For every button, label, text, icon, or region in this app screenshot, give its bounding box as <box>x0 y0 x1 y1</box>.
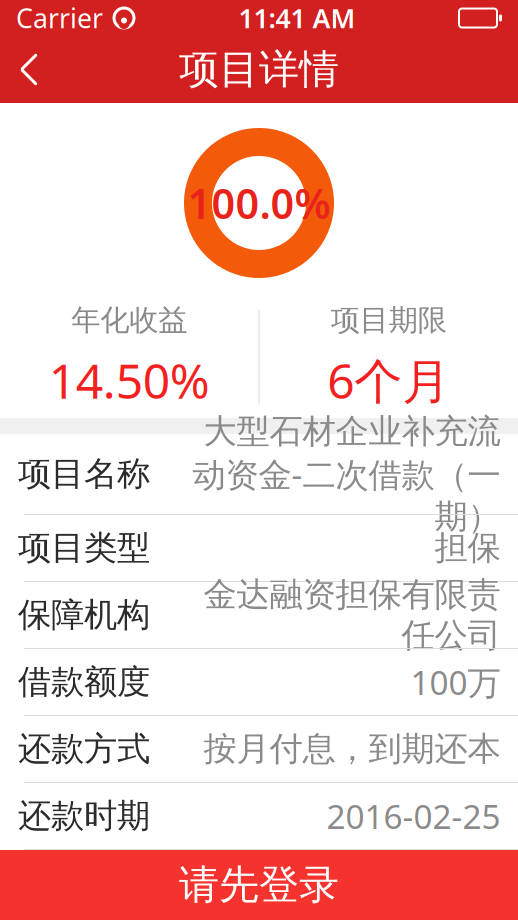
staticText: 按月付息，到期还本 <box>203 728 500 769</box>
staticText: 请先登录 <box>179 860 339 909</box>
staticText: 100万 <box>410 660 500 704</box>
staticText: 保障机构 <box>18 594 150 635</box>
button[interactable]: 返回 <box>0 39 58 99</box>
staticText: 年化收益 <box>71 302 187 338</box>
staticText: 11:41 AM <box>238 0 355 36</box>
staticText: 还款方式 <box>18 728 150 769</box>
staticText: 项目期限 <box>331 302 447 338</box>
staticText: 14.50% <box>49 348 210 412</box>
staticText: 100.0% <box>187 176 330 230</box>
staticText: 项目类型 <box>18 527 150 568</box>
button[interactable]: 请先登录 <box>0 850 518 920</box>
staticText: 还款时期 <box>18 795 150 836</box>
staticText: 项目详情 <box>179 45 339 94</box>
staticText: 大型石材企业补充流动资金-二次借款（一期） <box>192 411 500 537</box>
staticText: 6个月 <box>327 348 450 412</box>
staticText: 2016-02-25 <box>326 794 500 838</box>
staticText: Carrier <box>16 0 103 36</box>
staticText: 担保 <box>434 527 500 568</box>
staticText: 项目名称 <box>18 453 150 494</box>
staticText: 借款额度 <box>18 661 150 702</box>
staticText: 金达融资担保有限责任公司 <box>203 574 500 656</box>
